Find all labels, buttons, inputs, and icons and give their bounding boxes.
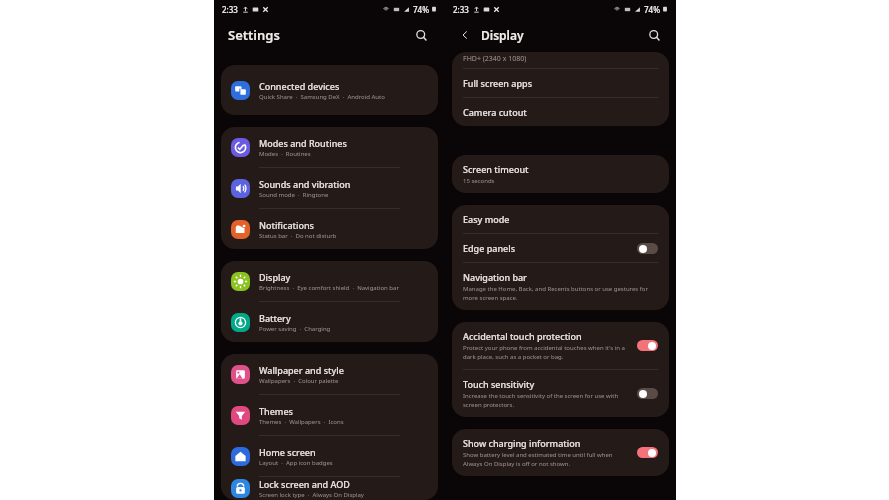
button[interactable]: Camera cutout [452, 98, 669, 126]
button[interactable]: Wallpaper and style [221, 354, 438, 394]
staticText: Display [259, 271, 291, 283]
staticText: Sound mode · Ringtone [259, 191, 329, 199]
staticText: Themes [259, 405, 293, 417]
staticText: Protect your phone from accidental touch… [463, 344, 629, 361]
staticText: Show charging information [463, 437, 581, 449]
button[interactable]: Back [457, 27, 473, 43]
button[interactable]: On [637, 340, 658, 351]
staticText: Themes · Wallpapers · Icons [259, 418, 344, 426]
staticText: Brightness · Eye comfort shield · Naviga… [259, 284, 399, 292]
staticText: 2:33 [222, 4, 238, 15]
staticText: 15 seconds [463, 177, 495, 185]
staticText: Modes · Routines [259, 150, 311, 158]
staticText: Screen timeout [463, 163, 529, 175]
staticText: Settings [228, 26, 280, 44]
staticText: Battery [259, 312, 291, 324]
button[interactable]: Battery [221, 302, 438, 342]
button[interactable]: Modes and Routines [221, 127, 438, 167]
staticText: Home screen [259, 446, 316, 458]
staticText: FHD+ (2340 x 1080) [463, 54, 527, 64]
staticText: Display [481, 27, 524, 43]
staticText: Camera cutout [463, 106, 527, 118]
button[interactable]: Themes [221, 395, 438, 435]
staticText: Connected devices [259, 80, 340, 92]
staticText: Sounds and vibration [259, 178, 351, 190]
button[interactable]: Display [221, 261, 438, 301]
button[interactable]: Navigation bar [452, 263, 669, 310]
staticText: 74% [413, 4, 429, 15]
button[interactable]: Sounds and vibration [221, 168, 438, 208]
staticText: Modes and Routines [259, 137, 347, 149]
staticText: Notifications [259, 219, 314, 231]
staticText: Manage the Home, Back, and Recents butto… [463, 285, 658, 302]
button[interactable]: Accidental touch protection [452, 322, 669, 369]
staticText: Quick Share · Samsung DeX · Android Auto [259, 93, 385, 101]
staticText: Screen lock type · Always On Display [259, 491, 364, 499]
button[interactable]: Full screen apps [452, 69, 669, 97]
button[interactable]: Screen timeout [452, 155, 669, 193]
staticText: Touch sensitivity [463, 378, 535, 390]
button[interactable]: Edge panels [452, 234, 669, 262]
button[interactable]: Search [411, 25, 431, 45]
staticText: Accidental touch protection [463, 330, 582, 342]
staticText: Wallpapers · Colour palette [259, 377, 339, 385]
button[interactable]: Touch sensitivity [452, 370, 669, 417]
staticText: Full screen apps [463, 77, 533, 89]
button[interactable]: Show charging information [452, 429, 669, 476]
staticText: 74% [644, 4, 660, 15]
button[interactable]: Home screen [221, 436, 438, 476]
button[interactable]: Easy mode [452, 205, 669, 233]
staticText: 2:33 [453, 4, 469, 15]
staticText: Wallpaper and style [259, 364, 344, 376]
staticText: Show battery level and estimated time un… [463, 451, 629, 468]
staticText: Easy mode [463, 213, 510, 225]
staticText: Increase the touch sensitivity of the sc… [463, 392, 629, 409]
button[interactable]: Off [637, 243, 658, 254]
button[interactable]: Lock screen and AOD [221, 477, 438, 500]
button[interactable]: Search [644, 25, 664, 45]
staticText: Navigation bar [463, 271, 527, 283]
button[interactable]: FHD+ (2340 x 1080) [452, 52, 669, 68]
staticText: Status bar · Do not disturb [259, 232, 337, 240]
button[interactable]: Off [637, 388, 658, 399]
staticText: Layout · App icon badges [259, 459, 333, 467]
staticText: Edge panels [463, 242, 516, 254]
staticText: Power saving · Charging [259, 325, 331, 333]
staticText: Lock screen and AOD [259, 478, 350, 490]
button[interactable]: On [637, 447, 658, 458]
button[interactable]: Connected devices [221, 65, 438, 115]
button[interactable]: Notifications [221, 209, 438, 249]
